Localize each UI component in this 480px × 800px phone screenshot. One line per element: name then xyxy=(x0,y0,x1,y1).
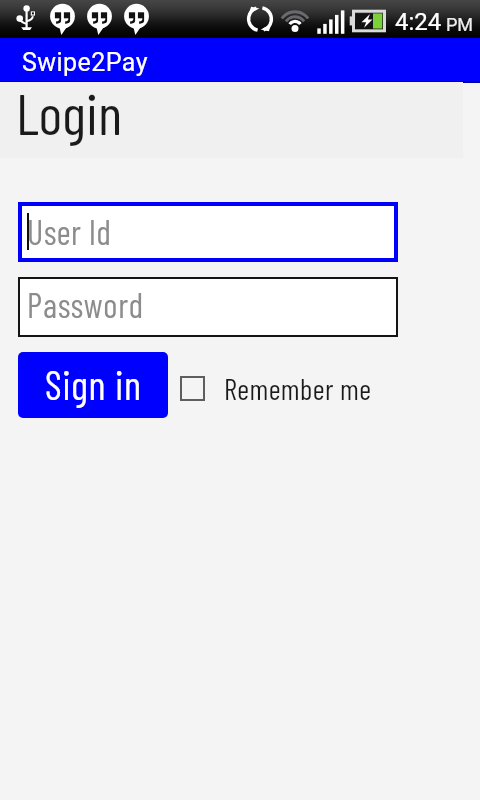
button[interactable]: Swipe2Pay xyxy=(0,38,480,82)
button[interactable]: Remember me xyxy=(180,371,353,406)
staticText: Login xyxy=(16,78,123,146)
button[interactable]: Sign in xyxy=(18,352,168,418)
staticText: Remember me xyxy=(224,371,372,406)
staticText: Swipe2Pay xyxy=(22,48,148,77)
staticText: Password xyxy=(27,284,145,325)
staticText: User Id xyxy=(27,211,112,252)
staticText: 4:24 xyxy=(395,8,442,36)
staticText: PM xyxy=(446,14,474,35)
button[interactable]: Password xyxy=(20,279,396,335)
staticText: Sign in xyxy=(45,360,142,408)
button[interactable]: User Id xyxy=(22,206,394,258)
